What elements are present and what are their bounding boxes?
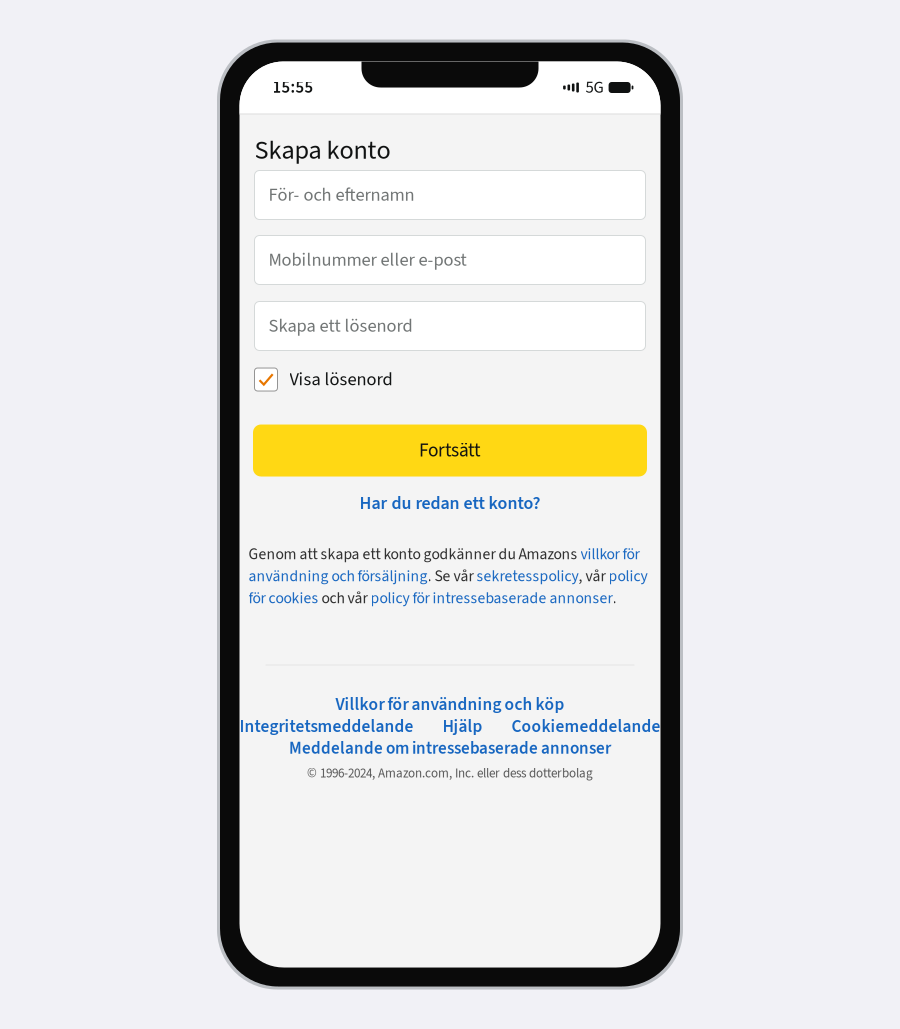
staticText: Har du redan ett konto? bbox=[359, 491, 540, 516]
staticText: 5G bbox=[585, 76, 603, 99]
button[interactable]: Visa lösenord bbox=[254, 365, 645, 393]
staticText: Meddelande om intressebaserade annonser bbox=[289, 736, 611, 761]
staticText: för cookies bbox=[248, 587, 318, 610]
staticText: och vår bbox=[318, 587, 370, 610]
staticText: Villkor för användning och köp bbox=[335, 692, 564, 717]
button[interactable]: Har du redan ett konto? bbox=[254, 492, 645, 514]
button[interactable]: Integritetsmeddelande bbox=[239, 714, 413, 739]
staticText: © 1996-2024, Amazon.com, Inc. eller dess… bbox=[307, 764, 593, 783]
staticText: Integritetsmeddelande bbox=[239, 714, 413, 739]
staticText: . bbox=[612, 587, 616, 610]
button[interactable]: Villkor för användning och köp bbox=[239, 693, 660, 715]
staticText: sekretesspolicy bbox=[476, 565, 578, 588]
staticText: , vår bbox=[578, 565, 608, 588]
staticText: villkor för bbox=[580, 543, 639, 566]
staticText: För- och efternamn bbox=[268, 182, 414, 208]
button[interactable]: Fortsätt bbox=[253, 424, 647, 476]
button[interactable]: Cookiemeddelande bbox=[511, 714, 660, 739]
staticText: 15:55 bbox=[272, 76, 313, 99]
staticText: användning och försäljning bbox=[248, 565, 427, 588]
button[interactable]: Meddelande om intressebaserade annonser bbox=[239, 737, 660, 759]
staticText: Cookiemeddelande bbox=[511, 714, 660, 739]
staticText: Visa lösenord bbox=[289, 366, 392, 393]
staticText: policy bbox=[608, 565, 647, 588]
button[interactable]: Skapa ett lösenord bbox=[254, 301, 645, 350]
staticText: Hjälp bbox=[442, 714, 482, 739]
staticText: Fortsätt bbox=[419, 437, 481, 464]
staticText: Skapa ett lösenord bbox=[268, 313, 412, 339]
staticText: Skapa konto bbox=[254, 132, 390, 169]
staticText: Mobilnummer eller e-post bbox=[268, 247, 466, 273]
staticText: Genom att skapa ett konto godkänner du A… bbox=[248, 543, 580, 566]
button[interactable]: För- och efternamn bbox=[254, 170, 645, 219]
staticText: policy för intressebaserade annonser bbox=[370, 587, 612, 610]
staticText: . Se vår bbox=[427, 565, 476, 588]
button[interactable]: Mobilnummer eller e-post bbox=[254, 235, 645, 284]
button[interactable]: Hjälp bbox=[442, 714, 482, 739]
